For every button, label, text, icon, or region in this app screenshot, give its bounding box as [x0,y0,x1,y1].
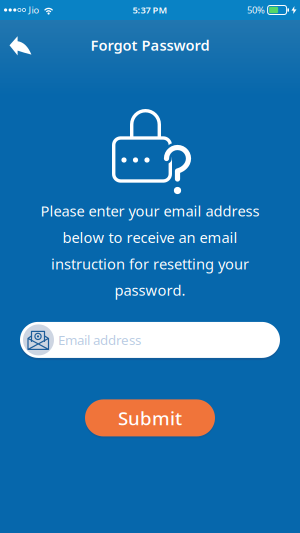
button[interactable]: Email address [0,320,300,360]
staticText: instruction for resetting your [51,254,249,273]
button[interactable]: Submit [82,398,218,438]
button[interactable]: Back [0,28,35,62]
staticText: Please enter your email address [40,201,259,220]
staticText: 50% [247,4,265,16]
staticText: password. [114,280,185,300]
staticText: 5:37 PM [132,4,167,16]
staticText: Submit [118,405,182,430]
staticText: Jio [29,4,40,16]
staticText: Forgot Password [90,35,209,55]
staticText: below to receive an email [62,227,237,247]
staticText: Email address [58,331,141,349]
